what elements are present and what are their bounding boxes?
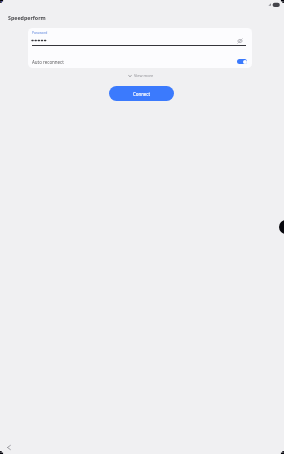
staticText: Connect bbox=[133, 91, 151, 97]
button[interactable]: Show password bbox=[234, 35, 246, 47]
button[interactable]: Back bbox=[3, 441, 14, 452]
staticText: View more bbox=[134, 73, 154, 78]
button[interactable]: Connect bbox=[109, 86, 174, 101]
staticText: Password bbox=[32, 30, 48, 35]
staticText: Auto reconnect bbox=[32, 59, 64, 65]
staticText: Speedperform bbox=[8, 14, 46, 21]
button[interactable]: Auto reconnect bbox=[28, 55, 252, 68]
button[interactable]: View more bbox=[125, 71, 157, 80]
